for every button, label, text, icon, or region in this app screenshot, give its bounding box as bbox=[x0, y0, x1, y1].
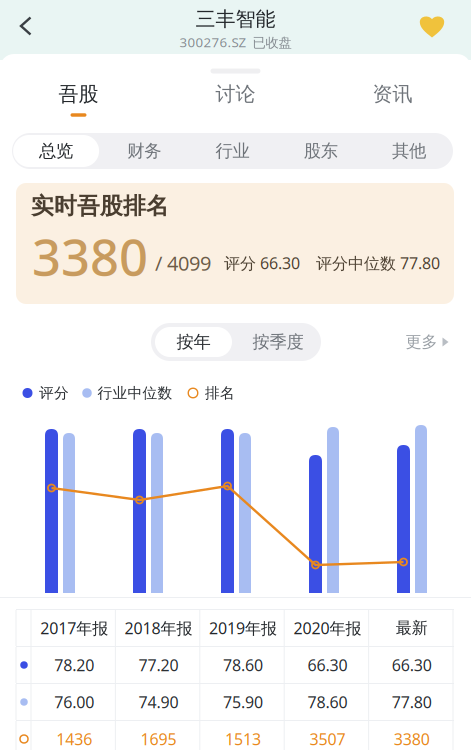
staticText: 实时吾股排名 bbox=[31, 192, 169, 220]
staticText: 评分 66.30 bbox=[224, 252, 300, 274]
button[interactable]: 财务 bbox=[100, 133, 188, 169]
button[interactable]: 资讯 bbox=[314, 77, 471, 125]
staticText: 75.90 bbox=[223, 691, 263, 713]
staticText: 最新 bbox=[396, 618, 428, 638]
staticText: 股东 bbox=[304, 140, 338, 162]
staticText: / 4099 bbox=[155, 250, 211, 276]
button[interactable]: 总览 bbox=[12, 133, 100, 169]
staticText: 74.90 bbox=[139, 691, 179, 713]
staticText: 78.60 bbox=[223, 654, 263, 676]
staticText: 按年 bbox=[176, 331, 210, 353]
staticText: 2017年报 bbox=[40, 617, 108, 639]
staticText: 1513 bbox=[225, 728, 261, 750]
staticText: 3380 bbox=[32, 222, 148, 290]
staticText: 行业 bbox=[215, 140, 249, 162]
staticText: 评分中位数 77.80 bbox=[316, 252, 440, 274]
staticText: 77.80 bbox=[392, 691, 432, 713]
staticText: 78.60 bbox=[307, 691, 347, 713]
staticText: 吾股 bbox=[58, 82, 98, 106]
staticText: 2020年报 bbox=[293, 617, 361, 639]
staticText: 2018年报 bbox=[125, 617, 193, 639]
staticText: 76.00 bbox=[54, 691, 94, 713]
button[interactable]: 按季度 bbox=[235, 323, 320, 361]
button[interactable]: 其他 bbox=[365, 133, 453, 169]
staticText: 1436 bbox=[56, 728, 92, 750]
staticText: 77.20 bbox=[139, 654, 179, 676]
staticText: 1695 bbox=[141, 728, 177, 750]
staticText: 3507 bbox=[309, 728, 345, 750]
staticText: 评分 bbox=[39, 384, 69, 402]
staticText: 资讯 bbox=[372, 82, 412, 106]
staticText: 其他 bbox=[392, 140, 426, 162]
staticText: 行业中位数 bbox=[97, 384, 172, 402]
button[interactable]: 股东 bbox=[277, 133, 365, 169]
staticText: 财务 bbox=[127, 140, 161, 162]
staticText: 3380 bbox=[394, 728, 430, 750]
staticText: 按季度 bbox=[252, 331, 303, 353]
button[interactable]: Favorite bbox=[408, 4, 456, 48]
staticText: 总览 bbox=[39, 140, 73, 162]
staticText: 更多 bbox=[405, 332, 437, 352]
button[interactable]: 吾股 bbox=[0, 77, 157, 125]
button[interactable]: 行业 bbox=[188, 133, 277, 169]
staticText: 讨论 bbox=[215, 82, 255, 106]
button[interactable]: Back bbox=[1, 4, 51, 48]
button[interactable]: 讨论 bbox=[157, 77, 314, 125]
staticText: 三丰智能 bbox=[195, 7, 275, 31]
staticText: 排名 bbox=[205, 384, 235, 402]
button[interactable]: 更多 bbox=[395, 325, 459, 359]
staticText: 300276.SZ 已收盘 bbox=[179, 33, 291, 51]
staticText: 78.20 bbox=[54, 654, 94, 676]
staticText: 66.30 bbox=[392, 654, 432, 676]
staticText: 2019年报 bbox=[209, 617, 277, 639]
button[interactable]: 按年 bbox=[153, 323, 234, 361]
staticText: 66.30 bbox=[307, 654, 347, 676]
